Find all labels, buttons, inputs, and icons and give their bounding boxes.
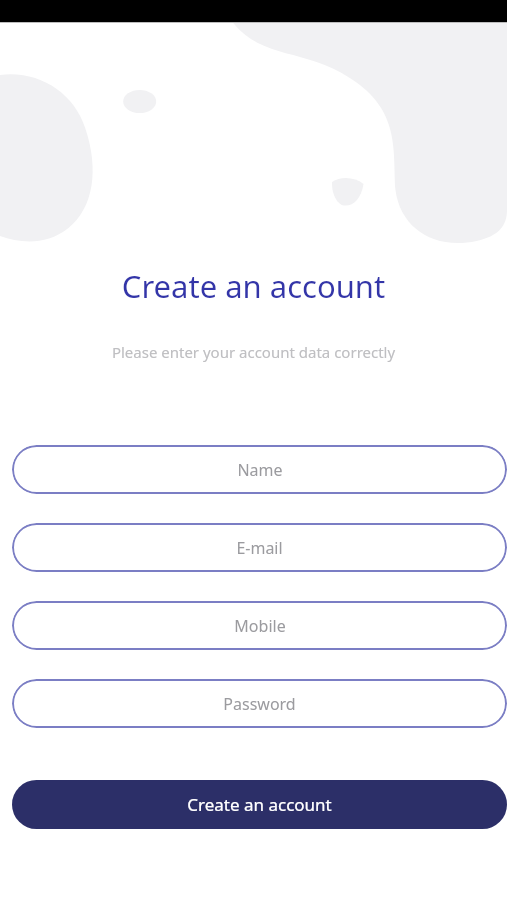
staticText: Name: [237, 459, 283, 481]
button[interactable]: Password: [12, 679, 507, 728]
staticText: E-mail: [236, 537, 283, 559]
staticText: Please enter your account data correctly: [0, 342, 507, 362]
button[interactable]: Mobile: [12, 601, 507, 650]
button[interactable]: E-mail: [12, 523, 507, 572]
staticText: Mobile: [234, 615, 286, 637]
button[interactable]: Name: [12, 445, 507, 494]
staticText: Password: [223, 693, 296, 715]
staticText: Create an account: [187, 793, 332, 816]
staticText: Create an account: [0, 265, 507, 307]
button[interactable]: Create an account: [12, 780, 507, 829]
